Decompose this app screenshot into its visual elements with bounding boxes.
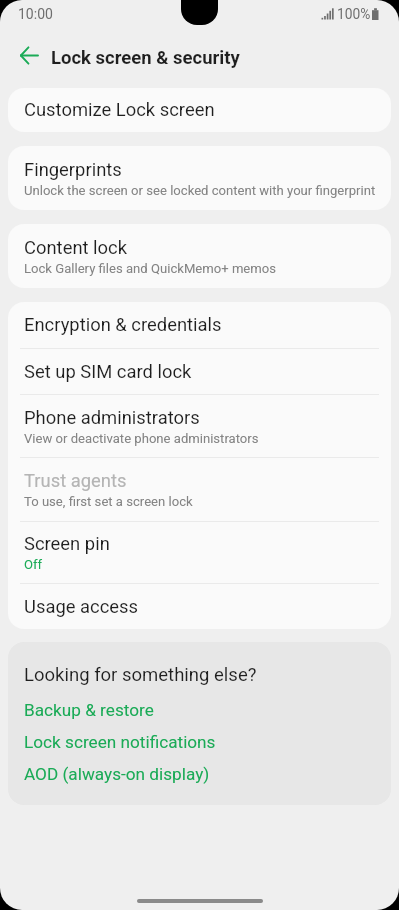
staticText: 100%: [337, 6, 371, 22]
button[interactable]: AOD (always-on display): [24, 764, 210, 784]
staticText: Lock screen notifications: [24, 732, 216, 752]
staticText: Content lock: [24, 237, 128, 259]
button[interactable]: Content lock: [8, 224, 391, 288]
staticText: Lock Gallery files and QuickMemo+ memos: [24, 261, 277, 276]
button[interactable]: Backup & restore: [24, 700, 154, 720]
staticText: Lock screen & security: [51, 47, 240, 69]
staticText: Trust agents: [24, 470, 127, 492]
button[interactable]: Fingerprints: [8, 146, 391, 210]
staticText: AOD (always-on display): [24, 764, 210, 784]
staticText: Usage access: [24, 596, 139, 618]
staticText: Fingerprints: [24, 159, 122, 181]
staticText: Phone administrators: [24, 407, 200, 429]
staticText: Customize Lock screen: [24, 99, 215, 121]
staticText: Unlock the screen or see locked content …: [24, 183, 376, 198]
staticText: Set up SIM card lock: [24, 361, 192, 383]
button[interactable]: Usage access: [8, 584, 391, 629]
button[interactable]: Phone administrators: [8, 395, 391, 458]
button[interactable]: Customize Lock screen: [8, 88, 391, 132]
button[interactable]: Encryption & credentials: [8, 302, 391, 349]
staticText: 10:00: [18, 6, 53, 22]
staticText: View or deactivate phone administrators: [24, 431, 259, 446]
staticText: Looking for something else?: [24, 664, 257, 686]
button[interactable]: Back: [12, 38, 46, 72]
staticText: Off: [24, 557, 43, 572]
button[interactable]: Screen pin: [8, 521, 391, 584]
button[interactable]: Trust agents: [8, 458, 391, 522]
staticText: Encryption & credentials: [24, 314, 222, 336]
staticText: Screen pin: [24, 533, 110, 555]
staticText: To use, first set a screen lock: [24, 494, 193, 509]
staticText: Backup & restore: [24, 700, 154, 720]
button[interactable]: Lock screen notifications: [24, 732, 216, 752]
button[interactable]: Set up SIM card lock: [8, 349, 391, 395]
